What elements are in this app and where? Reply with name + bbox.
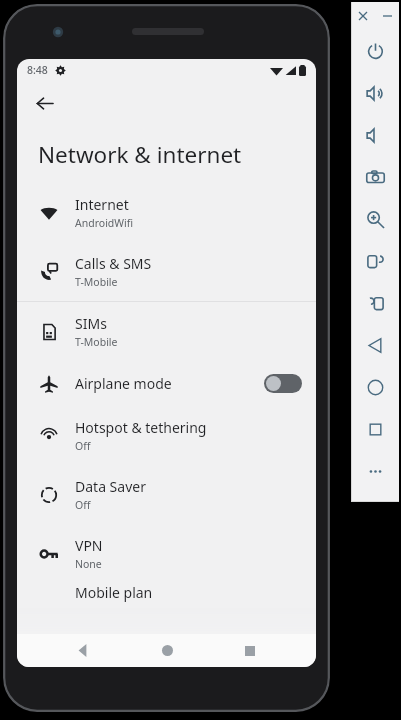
staticText: Off — [75, 498, 91, 512]
button[interactable]: Overview — [232, 634, 268, 667]
staticText: T-Mobile — [75, 275, 118, 289]
button[interactable]: Airplane mode — [17, 361, 316, 406]
button[interactable]: Overview — [351, 408, 399, 450]
button[interactable]: Hotspot & tethering — [17, 406, 316, 465]
staticText: Data Saver — [75, 477, 146, 496]
staticText: VPN — [75, 536, 103, 555]
button[interactable]: More — [351, 450, 399, 492]
button[interactable]: Internet — [17, 183, 316, 242]
staticText: 8:48 — [27, 63, 48, 77]
button[interactable]: VPN — [17, 524, 316, 583]
button[interactable]: Home — [149, 634, 185, 667]
staticText: SIMs — [75, 314, 107, 333]
button[interactable]: Data Saver — [17, 465, 316, 524]
staticText: AndroidWifi — [75, 216, 134, 230]
staticText: None — [75, 557, 102, 571]
button[interactable]: Rotate right — [351, 282, 399, 324]
staticText: Airplane mode — [75, 374, 172, 393]
staticText: Off — [75, 439, 91, 453]
staticText: T-Mobile — [75, 335, 118, 349]
staticText: Calls & SMS — [75, 254, 152, 273]
button[interactable]: Airplane mode toggle — [264, 374, 302, 393]
staticText: Internet — [75, 195, 129, 214]
button[interactable]: SIMs — [17, 302, 316, 361]
staticText: Network & internet — [38, 139, 242, 170]
button[interactable]: Screenshot — [351, 156, 399, 198]
staticText: Mobile plan — [75, 583, 153, 602]
button[interactable]: Volume up — [351, 72, 399, 114]
button[interactable]: Calls & SMS — [17, 242, 316, 301]
button[interactable]: Mobile plan — [17, 583, 316, 623]
button[interactable]: Rotate left — [351, 240, 399, 282]
button[interactable]: Back — [27, 86, 61, 120]
button[interactable]: Zoom — [351, 198, 399, 240]
button[interactable]: Back — [65, 634, 101, 667]
button[interactable]: Volume down — [351, 114, 399, 156]
button[interactable]: Home — [351, 366, 399, 408]
staticText: Hotspot & tethering — [75, 418, 207, 437]
button[interactable]: Power — [351, 30, 399, 72]
button[interactable]: Close — [351, 2, 375, 30]
button[interactable]: Back — [351, 324, 399, 366]
button[interactable]: Minimize — [375, 2, 399, 30]
